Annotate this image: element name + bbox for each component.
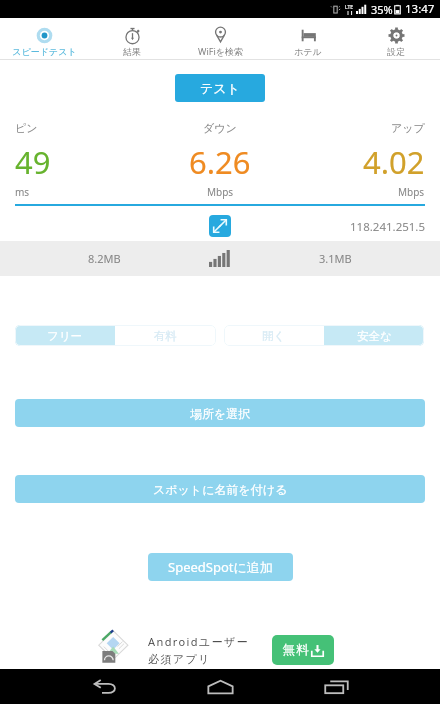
staticText: ダウン: [203, 121, 237, 135]
button[interactable]: 無料: [272, 635, 334, 665]
button[interactable]: Expand: [209, 215, 231, 237]
staticText: スポットに名前を付ける: [153, 482, 288, 497]
button[interactable]: 設定: [352, 18, 440, 59]
staticText: 8.2MB: [88, 251, 121, 266]
button[interactable]: 場所を選択: [15, 399, 425, 427]
button[interactable]: テスト: [175, 74, 265, 102]
staticText: ピン: [15, 121, 38, 135]
staticText: 場所を選択: [190, 406, 251, 421]
button[interactable]: SpeedSpotに追加: [148, 553, 293, 581]
staticText: 118.241.251.5: [350, 219, 426, 235]
staticText: 安全な: [357, 329, 392, 343]
staticText: 13:47: [405, 1, 435, 17]
staticText: 必須アプリ: [148, 652, 211, 666]
staticText: LTE: [345, 4, 354, 11]
staticText: 3.1MB: [319, 251, 352, 266]
button[interactable]: Back: [76, 669, 133, 704]
button[interactable]: 開く: [224, 325, 324, 346]
staticText: テスト: [200, 80, 240, 96]
staticText: アップ: [391, 121, 425, 135]
button[interactable]: Home: [192, 669, 249, 704]
staticText: Androidユーザー: [148, 634, 250, 649]
button[interactable]: ホテル: [264, 18, 352, 59]
staticText: フリー: [47, 329, 83, 343]
button[interactable]: 安全な: [324, 325, 424, 346]
staticText: ms: [15, 185, 30, 199]
button[interactable]: スピードテスト: [0, 18, 88, 59]
staticText: 49: [15, 141, 51, 183]
staticText: 35%: [371, 2, 393, 17]
staticText: 6.26: [189, 141, 251, 183]
button[interactable]: フリー: [15, 325, 115, 346]
button[interactable]: スポットに名前を付ける: [15, 475, 425, 503]
staticText: 無料: [282, 642, 309, 658]
staticText: SpeedSpotに追加: [168, 558, 273, 576]
staticText: 結果: [123, 46, 141, 57]
button[interactable]: 有料: [115, 325, 216, 346]
staticText: 有料: [154, 329, 177, 343]
staticText: 開く: [262, 329, 286, 343]
staticText: ホテル: [294, 46, 322, 57]
staticText: Mbps: [398, 185, 425, 199]
staticText: Mbps: [207, 185, 234, 199]
staticText: WiFiを検索: [198, 45, 243, 57]
button[interactable]: 結果: [88, 18, 176, 59]
button[interactable]: WiFiを検索: [176, 18, 264, 59]
staticText: 設定: [387, 46, 405, 57]
staticText: 4.02: [363, 141, 425, 183]
button[interactable]: Recents: [308, 669, 365, 704]
button[interactable]: Androidユーザー: [0, 618, 440, 669]
staticText: スピードテスト: [12, 46, 77, 57]
